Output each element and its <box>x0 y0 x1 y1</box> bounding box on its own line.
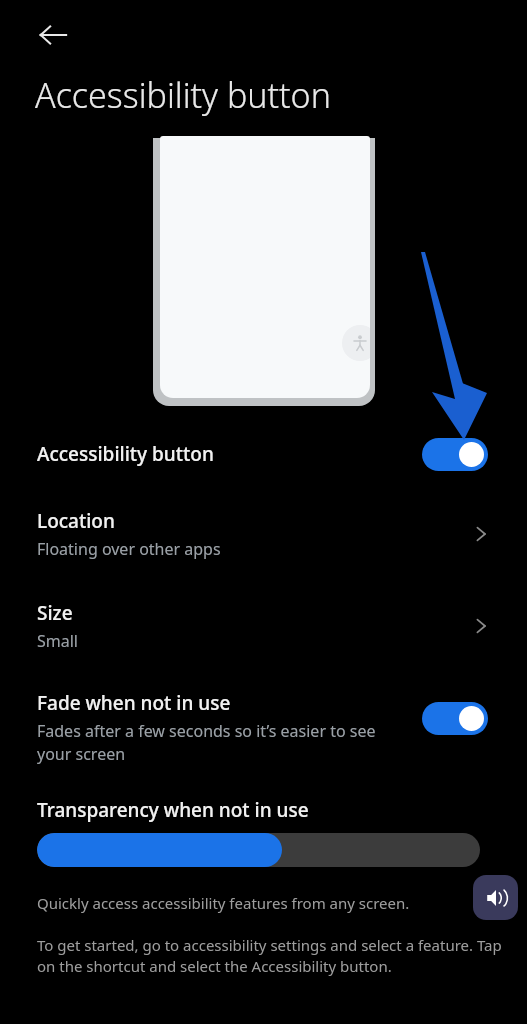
button[interactable]: Accessibility button <box>0 424 527 484</box>
button[interactable]: Transparency slider <box>37 833 480 867</box>
staticText: Floating over other apps <box>37 538 221 560</box>
staticText: Accessibility button <box>37 441 214 467</box>
staticText: Fades after a few seconds so it’s easier… <box>37 720 387 765</box>
button[interactable]: Back <box>22 4 84 66</box>
staticText: Accessibility button <box>35 72 331 118</box>
button[interactable]: Location <box>0 508 527 560</box>
staticText: To get started, go to accessibility sett… <box>37 935 503 977</box>
staticText: Size <box>37 600 73 626</box>
button[interactable]: Volume <box>473 875 518 920</box>
button[interactable]: Toggle <box>422 702 488 735</box>
staticText: Small <box>37 630 78 652</box>
staticText: Transparency when not in use <box>37 797 309 823</box>
button[interactable]: Fade when not in use <box>0 690 527 765</box>
staticText: Fade when not in use <box>37 690 231 716</box>
button[interactable]: Size <box>0 600 527 652</box>
staticText: Quickly access accessibility features fr… <box>37 893 410 913</box>
other: Accessibility button preview <box>342 325 370 361</box>
button[interactable]: Toggle <box>422 438 488 471</box>
staticText: Location <box>37 508 115 534</box>
